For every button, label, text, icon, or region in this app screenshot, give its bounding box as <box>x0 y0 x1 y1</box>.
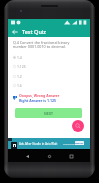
button[interactable]: INSTALL <box>75 141 84 145</box>
staticText: Q.4 Convert the fractional binary number… <box>13 40 82 49</box>
button[interactable]: Hint <box>72 120 84 132</box>
staticText: Right Answer is 1.125 <box>19 98 56 103</box>
staticText: Ooopss, Wrong Answer <box>19 93 60 98</box>
button[interactable]: Recents <box>66 151 76 161</box>
staticText: 1.2 <box>17 74 22 79</box>
staticText: 1.125 <box>17 64 26 69</box>
button[interactable]: 1.6 <box>13 81 48 90</box>
staticText: Test Quiz <box>22 28 46 35</box>
staticText: 1.6 <box>17 83 22 88</box>
staticText: Ads After Studio in Asia Wait <box>19 142 58 146</box>
button[interactable]: 1.2 <box>13 72 48 81</box>
button[interactable]: Home <box>44 151 54 161</box>
staticText: NEXT <box>44 111 53 116</box>
button[interactable]: Back <box>10 27 19 36</box>
button[interactable]: 1.125 <box>13 62 48 71</box>
button[interactable]: NEXT <box>15 108 82 118</box>
staticText: 1.4 <box>17 55 22 60</box>
staticText: Fullscreen <box>63 142 75 145</box>
button[interactable]: 1.4 <box>13 53 48 62</box>
staticText: INSTALL <box>75 141 84 145</box>
button[interactable]: Ads After Studio in Asia Wait <box>8 138 90 149</box>
button[interactable]: Back <box>22 151 32 161</box>
